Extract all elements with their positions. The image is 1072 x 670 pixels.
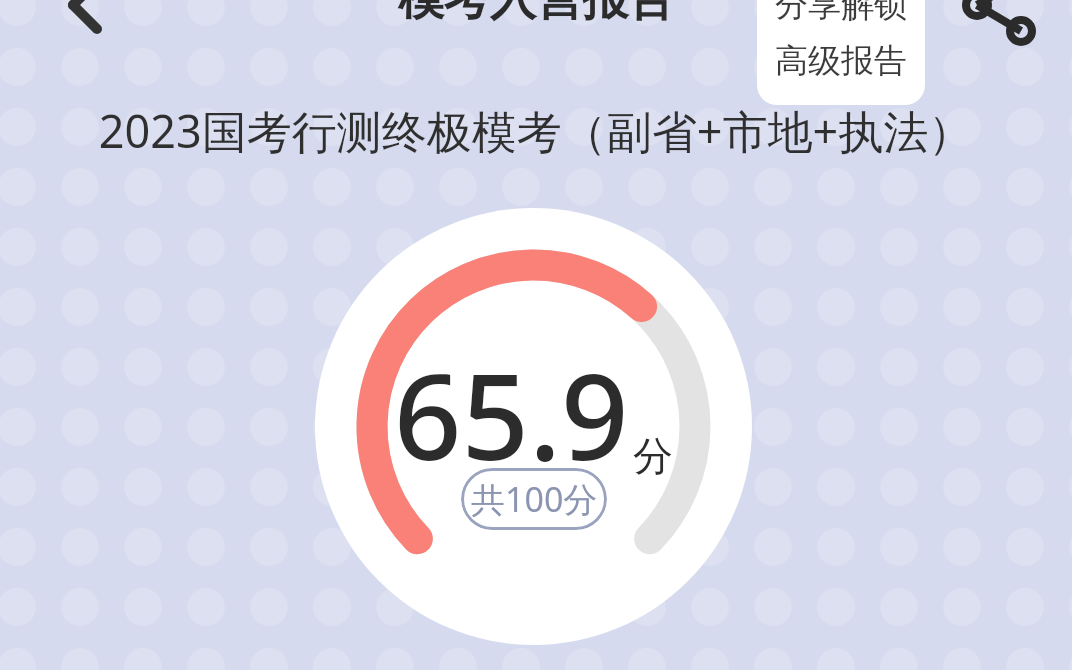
button[interactable]: 返回 <box>38 0 122 46</box>
staticText: 高级报告 <box>775 40 907 82</box>
staticText: 分 <box>633 431 673 481</box>
button[interactable]: 分享解锁 <box>757 0 925 105</box>
staticText: 2023国考行测终极模考（副省+市地+执法） <box>26 100 1046 161</box>
staticText: 共100分 <box>471 476 598 522</box>
staticText: 模考入营报告 <box>398 0 674 28</box>
button[interactable]: 共100分 <box>461 468 607 530</box>
button[interactable]: 分享 <box>952 0 1046 48</box>
staticText: 分享解锁 <box>775 0 907 26</box>
staticText: 65.9 <box>394 334 629 495</box>
